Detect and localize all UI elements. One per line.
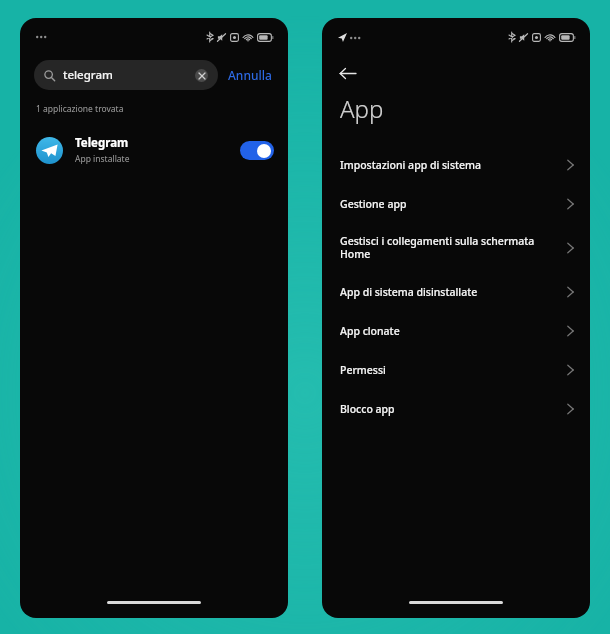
staticText: Blocco app	[340, 402, 553, 416]
staticText: Annulla	[228, 67, 272, 83]
button[interactable]: Blocco app	[322, 389, 590, 428]
button[interactable]: Cancella ricerca	[195, 69, 208, 82]
button[interactable]: Gestione app	[322, 184, 590, 223]
button[interactable]: Gestisci i collegamenti sulla schermata …	[322, 223, 590, 272]
button[interactable]: App di sistema disinstallate	[322, 272, 590, 311]
staticText: Impostazioni app di sistema	[340, 158, 553, 172]
staticText: App clonate	[340, 324, 553, 338]
button[interactable]: Telegram	[20, 129, 288, 171]
staticText: App	[340, 92, 384, 125]
button[interactable]: telegram	[34, 60, 218, 90]
staticText: Permessi	[340, 363, 553, 377]
staticText: App di sistema disinstallate	[340, 285, 553, 299]
button[interactable]: Permessi	[322, 350, 590, 389]
button[interactable]: App clonate	[322, 311, 590, 350]
staticText: Gestione app	[340, 197, 553, 211]
button[interactable]: Telegram abilitato	[240, 141, 274, 160]
button[interactable]: Indietro	[330, 56, 364, 90]
staticText: telegram	[63, 67, 113, 83]
staticText: Gestisci i collegamenti sulla schermata …	[340, 234, 553, 261]
button[interactable]: Impostazioni app di sistema	[322, 145, 590, 184]
staticText: App installate	[75, 153, 130, 165]
staticText: Telegram	[75, 135, 129, 151]
staticText: 1 applicazione trovata	[36, 103, 124, 115]
button[interactable]: Annulla	[218, 63, 274, 87]
